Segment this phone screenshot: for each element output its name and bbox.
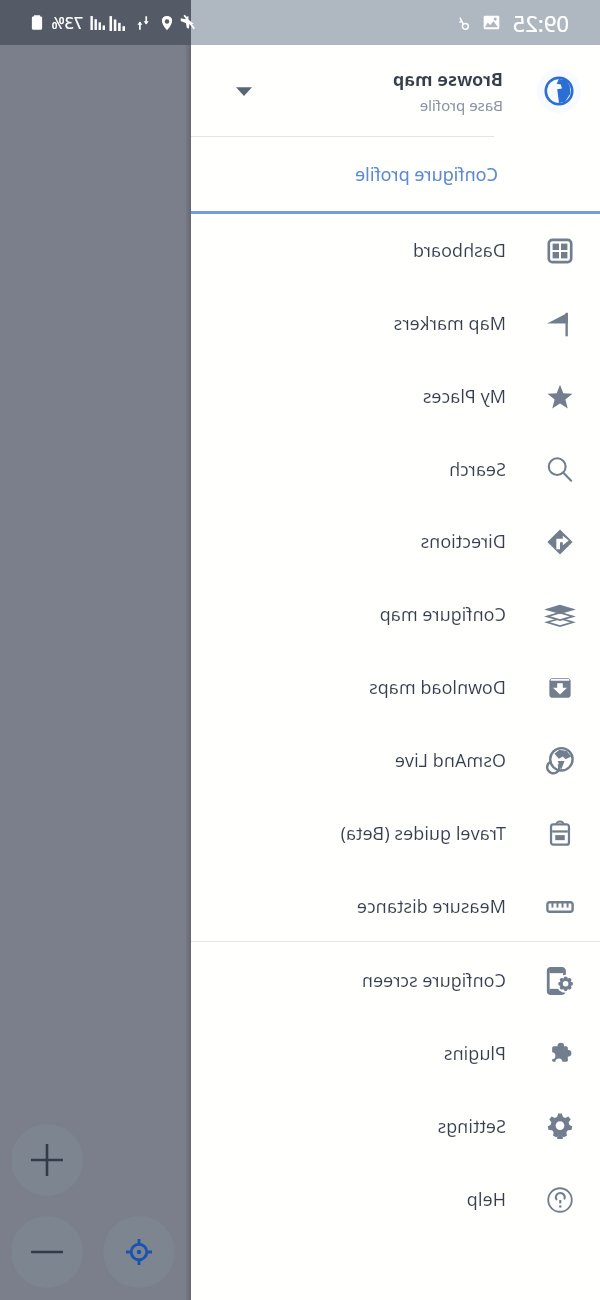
button[interactable]: Zoom out [11,1216,83,1288]
staticText: Measure distance [356,894,506,919]
staticText: Dashboard [412,238,506,263]
button[interactable]: Search [191,433,600,506]
staticText: Base profile [419,95,503,115]
button[interactable]: Dashboard [191,214,600,287]
button[interactable]: Directions [191,505,600,578]
button[interactable]: OsmAnd Live [191,724,600,797]
staticText: Search [449,457,506,482]
button[interactable]: Settings [191,1090,600,1163]
button[interactable]: Expand profiles [221,68,267,114]
button[interactable]: Zoom in [11,1124,83,1196]
button[interactable]: Configure screen [191,944,600,1017]
staticText: Configure map [379,602,506,627]
staticText: Plugins [443,1041,506,1066]
button[interactable]: Help [191,1163,600,1236]
button[interactable]: Measure distance [191,870,600,943]
button[interactable]: Map markers [191,287,600,360]
staticText: OsmAnd Live [394,748,506,773]
staticText: Configure screen [361,968,506,993]
button[interactable]: Configure map [191,578,600,651]
staticText: Help [466,1187,506,1212]
button[interactable]: My location [103,1216,175,1288]
staticText: 09:25 [512,8,569,38]
staticText: Settings [437,1114,506,1139]
staticText: Download maps [369,675,506,700]
staticText: Directions [420,529,506,554]
staticText: Travel guides (Beta) [340,821,506,846]
button[interactable]: Download maps [191,651,600,724]
staticText: Map markers [393,311,506,336]
button[interactable]: Travel guides (Beta) [191,797,600,870]
staticText: My Places [422,384,506,409]
button[interactable]: Browse map [191,45,600,136]
button[interactable]: Configure profile [191,137,600,211]
staticText: Browse map [392,67,503,92]
staticText: 73% [51,12,83,34]
button[interactable]: My Places [191,360,600,433]
button[interactable]: Plugins [191,1017,600,1090]
staticText: Configure profile [355,162,498,187]
